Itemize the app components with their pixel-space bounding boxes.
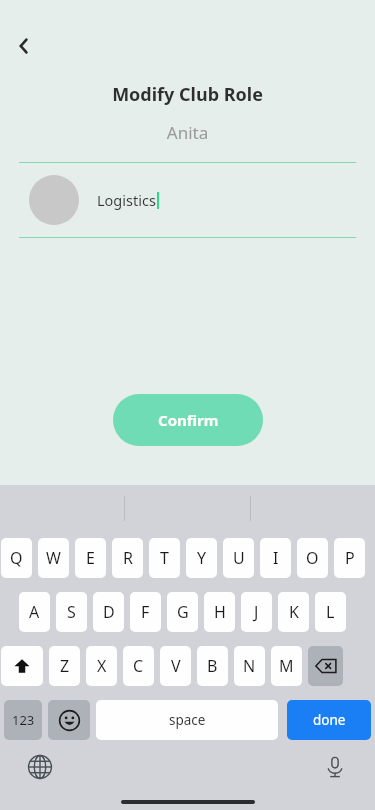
staticText: X	[97, 655, 107, 677]
staticText: Confirm	[158, 410, 219, 430]
staticText: F	[141, 601, 150, 623]
staticText: O	[306, 547, 319, 569]
staticText: B	[207, 655, 218, 677]
staticText: L	[326, 601, 335, 623]
staticText: N	[243, 655, 256, 677]
button[interactable]: Emoji	[48, 700, 90, 740]
button[interactable]: J	[241, 592, 272, 632]
button[interactable]: space	[96, 700, 278, 740]
button[interactable]: Confirm	[113, 394, 263, 446]
button[interactable]: U	[223, 538, 254, 578]
staticText: J	[254, 601, 259, 623]
button[interactable]: W	[38, 538, 69, 578]
button[interactable]: F	[130, 592, 161, 632]
staticText: U	[233, 547, 245, 569]
button[interactable]: Back	[6, 28, 42, 64]
staticText: R	[123, 547, 133, 569]
button[interactable]: L	[315, 592, 346, 632]
staticText: T	[160, 547, 169, 569]
button[interactable]: T	[149, 538, 180, 578]
staticText: C	[133, 655, 144, 677]
staticText: M	[279, 655, 294, 677]
staticText: V	[171, 655, 181, 677]
button[interactable]: M	[271, 646, 302, 686]
staticText: E	[86, 547, 95, 569]
staticText: S	[67, 601, 76, 623]
staticText: Z	[60, 655, 70, 677]
button[interactable]: Change keyboard language	[24, 751, 56, 783]
button[interactable]: V	[160, 646, 191, 686]
button[interactable]: G	[167, 592, 198, 632]
button[interactable]: S	[56, 592, 87, 632]
staticText: K	[289, 601, 299, 623]
button[interactable]: Q	[1, 538, 32, 578]
button[interactable]: Z	[49, 646, 80, 686]
button[interactable]: P	[334, 538, 365, 578]
staticText: A	[29, 601, 40, 623]
button[interactable]: N	[234, 646, 265, 686]
button[interactable]: C	[123, 646, 154, 686]
button[interactable]: Shift	[1, 646, 43, 686]
button[interactable]: 123	[4, 700, 42, 740]
button[interactable]: O	[297, 538, 328, 578]
staticText: D	[103, 601, 115, 623]
button[interactable]: H	[204, 592, 235, 632]
button[interactable]: K	[278, 592, 309, 632]
staticText: done	[313, 711, 346, 729]
staticText: G	[177, 601, 189, 623]
staticText: Q	[10, 547, 23, 569]
button[interactable]: B	[197, 646, 228, 686]
staticText: 123	[12, 711, 35, 729]
button[interactable]: E	[75, 538, 106, 578]
button[interactable]: Y	[186, 538, 217, 578]
staticText: Y	[197, 547, 207, 569]
button[interactable]: Backspace	[308, 646, 343, 686]
staticText: Logistics	[97, 190, 156, 210]
staticText: Anita	[0, 121, 375, 144]
button[interactable]: D	[93, 592, 124, 632]
staticText: H	[214, 601, 226, 623]
button[interactable]: R	[112, 538, 143, 578]
button[interactable]: I	[260, 538, 291, 578]
staticText: I	[273, 547, 279, 569]
button[interactable]: Voice input	[319, 751, 351, 783]
staticText: P	[345, 547, 355, 569]
button[interactable]: X	[86, 646, 117, 686]
staticText: space	[169, 711, 206, 729]
button[interactable]: Logistics	[0, 163, 375, 237]
staticText: W	[46, 547, 61, 569]
button[interactable]: A	[19, 592, 50, 632]
staticText: Modify Club Role	[0, 82, 375, 107]
button[interactable]: done	[287, 700, 371, 740]
